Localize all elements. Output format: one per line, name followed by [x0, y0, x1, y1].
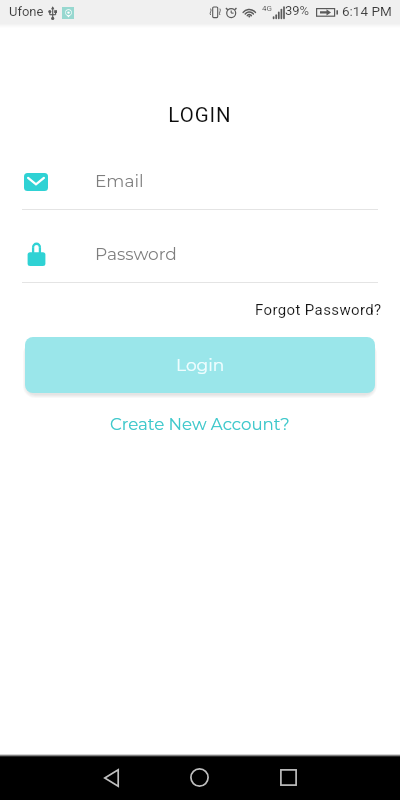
staticText: 6:14 PM — [342, 3, 392, 19]
button[interactable]: Create New Account? — [110, 414, 290, 434]
staticText: Forgot Password? — [255, 301, 382, 319]
staticText: 39% — [285, 3, 310, 18]
button[interactable]: Home — [177, 757, 222, 797]
staticText: 4G — [262, 4, 272, 13]
staticText: Password — [95, 244, 177, 265]
button[interactable]: Recents — [266, 757, 311, 797]
staticText: Ufone — [9, 4, 44, 19]
button[interactable]: Back — [89, 758, 134, 798]
staticText: Email — [95, 171, 144, 192]
button[interactable]: Login — [25, 337, 375, 393]
staticText: Login — [176, 355, 225, 376]
staticText: LOGIN — [0, 103, 400, 127]
staticText: Create New Account? — [110, 414, 290, 434]
button[interactable]: Forgot Password? — [255, 301, 382, 319]
